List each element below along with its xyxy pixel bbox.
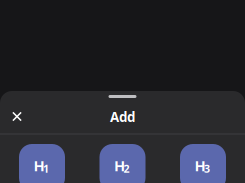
staticText: Add bbox=[110, 108, 135, 126]
button[interactable]: H bbox=[19, 144, 65, 183]
staticText: 3 bbox=[204, 162, 210, 176]
button[interactable]: H bbox=[180, 144, 226, 183]
button[interactable]: Close bbox=[0, 103, 33, 129]
staticText: H bbox=[33, 156, 44, 175]
staticText: H bbox=[114, 156, 125, 175]
staticText: H bbox=[194, 156, 205, 175]
button[interactable]: H bbox=[99, 144, 145, 183]
staticText: 1 bbox=[43, 162, 49, 176]
staticText: 2 bbox=[123, 162, 129, 176]
